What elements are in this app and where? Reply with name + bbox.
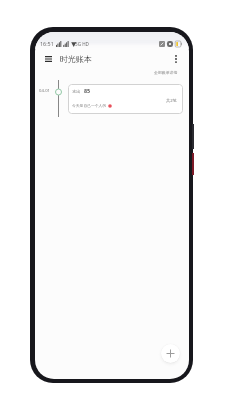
button[interactable]: 支出: [68, 84, 183, 114]
staticText: 16:51: [40, 40, 54, 47]
button[interactable]: More options: [168, 51, 184, 67]
button[interactable]: Add record: [161, 344, 180, 363]
button[interactable]: Menu: [40, 51, 56, 67]
staticText: 时光账本: [60, 54, 92, 64]
staticText: 共2笔: [166, 98, 177, 104]
staticText: 85: [84, 87, 91, 94]
staticText: 支出: [72, 89, 81, 94]
staticText: 今天是自己一个人的: [72, 103, 107, 108]
staticText: 5G HD: [75, 41, 89, 47]
staticText: 04-01: [39, 88, 50, 94]
staticText: 全部账单详情: [154, 70, 178, 75]
button[interactable]: 全部账单详情: [153, 69, 179, 76]
